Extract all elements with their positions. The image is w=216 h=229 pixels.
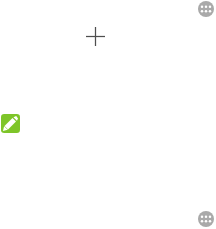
button[interactable]: Edit xyxy=(1,114,20,133)
button[interactable]: Apps xyxy=(198,1,214,17)
button[interactable]: Apps xyxy=(198,211,214,227)
button[interactable]: Add xyxy=(86,27,105,46)
